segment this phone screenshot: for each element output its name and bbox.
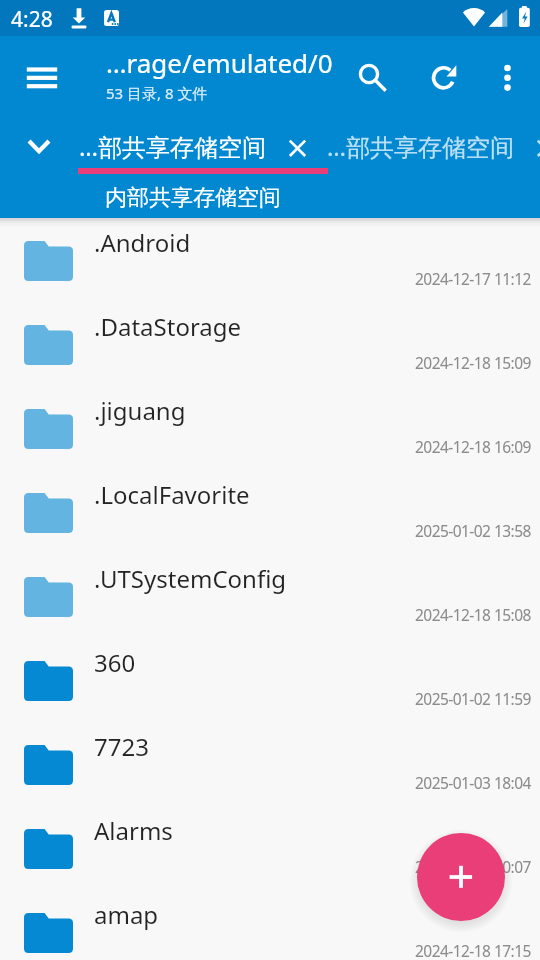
button[interactable]: amap (0, 890, 540, 960)
staticText: 2024-12-17 11:12 (415, 268, 531, 289)
button[interactable]: 内部共享存储空间 (105, 184, 281, 212)
button[interactable]: 7723 (0, 722, 540, 806)
staticText: 7723 (94, 730, 149, 763)
button[interactable]: Refresh (421, 55, 467, 101)
staticText: .LocalFavorite (94, 478, 250, 511)
staticText: …部共享存储空间 (327, 130, 514, 163)
staticText: .jiguang (94, 394, 186, 427)
button[interactable]: Add (417, 833, 505, 921)
button[interactable]: …rage/emulated/0 (106, 45, 333, 80)
button[interactable]: 360 (0, 638, 540, 722)
button[interactable]: More options (487, 56, 529, 98)
staticText: 53 目录, 8 文件 (106, 83, 208, 103)
button[interactable]: .LocalFavorite (0, 470, 540, 554)
button[interactable]: Search (346, 51, 392, 97)
staticText: .Android (94, 226, 191, 259)
staticText: 2025-01-02 13:58 (415, 520, 531, 541)
staticText: Alarms (94, 814, 173, 847)
staticText: 2024-12-18 10:07 (415, 856, 531, 877)
staticText: amap (94, 898, 159, 931)
button[interactable]: …部共享存储空间 (70, 120, 320, 172)
staticText: 4:28 (11, 5, 53, 34)
button[interactable]: .UTSystemConfig (0, 554, 540, 638)
button[interactable]: .DataStorage (0, 302, 540, 386)
button[interactable]: Show tab list (15, 122, 63, 170)
button[interactable]: .Android (0, 218, 540, 302)
staticText: 360 (94, 646, 136, 679)
button[interactable]: Alarms (0, 806, 540, 890)
staticText: …部共享存储空间 (79, 130, 266, 163)
staticText: 2024-12-18 15:09 (415, 352, 531, 373)
staticText: 2025-01-03 18:04 (415, 772, 531, 793)
button[interactable]: Close tab (280, 130, 316, 166)
staticText: …rage/emulated/0 (106, 45, 333, 80)
staticText: 2025-01-02 11:59 (415, 688, 531, 709)
staticText: 2024-12-18 17:15 (415, 940, 531, 960)
button[interactable]: Menu (18, 53, 66, 101)
staticText: .DataStorage (94, 310, 242, 343)
staticText: 2024-12-18 16:09 (415, 436, 531, 457)
button[interactable]: …部共享存储空间 (318, 120, 540, 172)
staticText: 2024-12-18 15:08 (415, 604, 531, 625)
staticText: .UTSystemConfig (94, 562, 287, 595)
button[interactable]: .jiguang (0, 386, 540, 470)
